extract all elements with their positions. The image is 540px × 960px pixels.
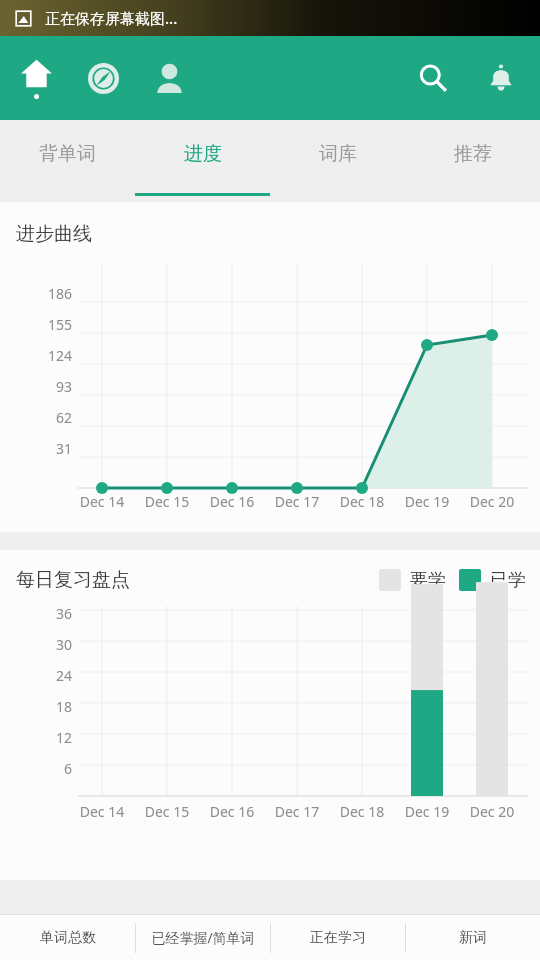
staticText: 词库 [319,142,357,166]
staticText: 每日复习盘点 [16,568,130,592]
staticText: Dec 20 [459,492,525,511]
staticText: 30 [0,635,72,654]
button[interactable]: 已经掌握/简单词 [136,915,270,960]
staticText: 6 [0,759,72,778]
staticText: 正在保存屏幕截图... [45,8,178,28]
staticText: 186 [0,284,72,303]
staticText: 36 [0,604,72,623]
button[interactable]: 背单词 [0,120,135,196]
staticText: Dec 16 [199,802,265,821]
staticText: Dec 20 [459,802,525,821]
staticText: 进度 [184,142,222,166]
staticText: Dec 18 [329,492,395,511]
staticText: 单词总数 [40,929,96,947]
staticText: Dec 18 [329,802,395,821]
staticText: Dec 15 [134,492,200,511]
button[interactable]: Search [404,49,462,107]
staticText: 124 [0,346,72,365]
staticText: 18 [0,697,72,716]
staticText: 正在学习 [310,929,366,947]
staticText: Dec 17 [264,802,330,821]
button[interactable]: 正在学习 [271,915,405,960]
staticText: Dec 14 [69,802,135,821]
staticText: 推荐 [454,142,492,166]
button[interactable]: Discover [74,49,132,107]
staticText: 93 [0,377,72,396]
staticText: Dec 16 [199,492,265,511]
staticText: Dec 19 [394,802,460,821]
button[interactable]: 单词总数 [0,915,135,960]
staticText: 要学 [410,569,446,592]
staticText: 155 [0,315,72,334]
button[interactable]: Profile [140,49,198,107]
button[interactable]: 新词 [406,915,540,960]
button[interactable]: Notifications [472,49,530,107]
staticText: 12 [0,728,72,747]
staticText: 背单词 [39,142,96,166]
button[interactable]: 词库 [270,120,405,196]
staticText: 进步曲线 [16,222,92,246]
staticText: 已经掌握/简单词 [151,928,255,947]
button[interactable]: 推荐 [405,120,540,196]
staticText: 62 [0,408,72,427]
staticText: Dec 19 [394,492,460,511]
staticText: 31 [0,439,72,458]
button[interactable]: 进度 [135,120,270,196]
staticText: Dec 15 [134,802,200,821]
staticText: 24 [0,666,72,685]
staticText: Dec 14 [69,492,135,511]
staticText: 新词 [459,929,487,947]
staticText: 已学 [490,569,526,592]
staticText: Dec 17 [264,492,330,511]
button[interactable]: Home [6,48,66,108]
